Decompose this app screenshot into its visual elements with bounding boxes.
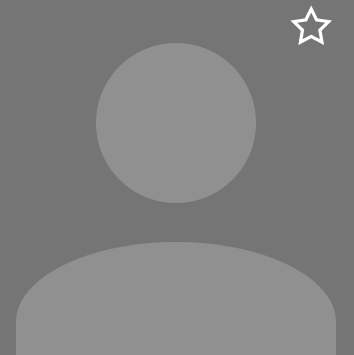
button[interactable]: Favorite (289, 5, 333, 49)
